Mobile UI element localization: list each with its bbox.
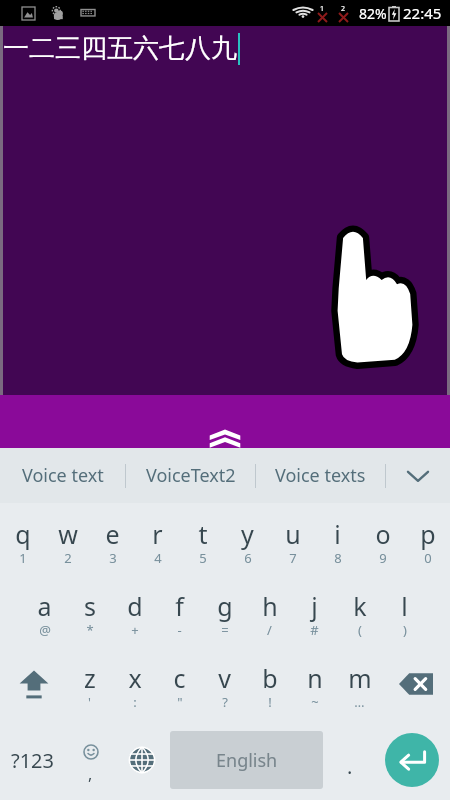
staticText: p (420, 517, 436, 551)
staticText: w (58, 517, 78, 551)
button[interactable]: d (112, 576, 157, 648)
button[interactable]: w (45, 503, 90, 576)
staticText: @ (39, 621, 51, 639)
staticText: m (348, 661, 372, 695)
staticText: 8 (334, 549, 342, 567)
staticText: / (267, 621, 272, 639)
button[interactable]: q (0, 503, 45, 576)
button[interactable]: More suggestions (386, 448, 450, 503)
button[interactable]: m (337, 648, 382, 720)
button[interactable]: t (180, 503, 225, 576)
staticText: 2 (341, 4, 346, 14)
button[interactable]: k (337, 576, 382, 648)
staticText: ' (88, 693, 91, 711)
staticText: ~ (311, 693, 319, 711)
staticText: ! (268, 693, 272, 711)
staticText: 4 (154, 549, 162, 567)
staticText: = (221, 621, 229, 639)
staticText: l (401, 589, 408, 623)
staticText: 82% (359, 4, 387, 23)
staticText: # (310, 621, 319, 639)
button[interactable]: Backspace (382, 648, 450, 720)
staticText: English (216, 748, 278, 773)
staticText: … (354, 693, 365, 711)
button[interactable]: a (22, 576, 67, 648)
staticText: 1 (320, 4, 325, 14)
staticText: 9 (379, 549, 387, 567)
button[interactable]: j (292, 576, 337, 648)
staticText: a (37, 589, 52, 623)
staticText: z (84, 661, 96, 695)
button[interactable]: c (157, 648, 202, 720)
staticText: h (262, 589, 278, 623)
staticText: t (198, 517, 208, 551)
button[interactable]: Shift (0, 648, 67, 720)
button[interactable]: n (292, 648, 337, 720)
button[interactable]: English (170, 731, 323, 789)
button[interactable]: Voice text (0, 448, 125, 503)
staticText: + (131, 621, 139, 639)
staticText: j (311, 589, 318, 623)
staticText: " (177, 693, 183, 711)
staticText: . (347, 753, 353, 780)
button[interactable]: v (202, 648, 247, 720)
staticText: ?123 (11, 747, 54, 774)
staticText: 0 (424, 549, 432, 567)
staticText: ) (403, 621, 407, 639)
staticText: r (152, 517, 163, 551)
button[interactable]: r (135, 503, 180, 576)
button[interactable]: Emoji (65, 720, 116, 800)
button[interactable]: i (315, 503, 360, 576)
staticText: 1 (19, 549, 27, 567)
button[interactable]: g (202, 576, 247, 648)
staticText: ? (222, 693, 228, 711)
button[interactable]: p (405, 503, 450, 576)
staticText: y (241, 517, 254, 551)
staticText: 3 (109, 549, 117, 567)
staticText: 6 (244, 549, 252, 567)
button[interactable]: . (326, 720, 373, 800)
staticText: i (334, 517, 341, 551)
button[interactable]: h (247, 576, 292, 648)
staticText: * (86, 621, 94, 639)
other: Expand (208, 428, 242, 448)
staticText: b (262, 661, 278, 695)
staticText: c (173, 661, 186, 695)
button[interactable]: s (67, 576, 112, 648)
button[interactable]: o (360, 503, 405, 576)
staticText: e (105, 517, 120, 551)
button[interactable]: ?123 (0, 720, 65, 800)
staticText: k (353, 589, 367, 623)
button[interactable]: y (225, 503, 270, 576)
staticText: ( (358, 621, 362, 639)
staticText: o (375, 517, 391, 551)
staticText: , (88, 763, 93, 785)
staticText: d (127, 589, 143, 623)
button[interactable]: z (67, 648, 112, 720)
staticText: g (217, 589, 233, 623)
staticText: u (285, 517, 301, 551)
staticText: - (177, 621, 182, 639)
staticText: 5 (199, 549, 207, 567)
staticText: s (84, 589, 96, 623)
button[interactable]: b (247, 648, 292, 720)
staticText: VoiceText2 (146, 463, 236, 488)
button[interactable]: VoiceText2 (126, 448, 255, 503)
button[interactable]: e (90, 503, 135, 576)
staticText: n (307, 661, 323, 695)
staticText: 2 (64, 549, 72, 567)
staticText: x (128, 661, 142, 695)
staticText: 22:45 (403, 3, 442, 23)
button[interactable]: u (270, 503, 315, 576)
staticText: q (15, 517, 31, 551)
button[interactable]: 一二三四五六七八九 (3, 26, 447, 395)
button[interactable]: l (382, 576, 427, 648)
staticText: 7 (289, 549, 297, 567)
button[interactable]: Change language (116, 720, 167, 800)
button[interactable]: x (112, 648, 157, 720)
staticText: : (133, 693, 137, 711)
staticText: v (218, 661, 231, 695)
button[interactable]: Enter (385, 733, 439, 787)
button[interactable]: f (157, 576, 202, 648)
button[interactable]: Voice texts (256, 448, 385, 503)
